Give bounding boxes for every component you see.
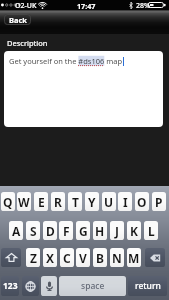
button[interactable]: G — [76, 221, 90, 240]
button[interactable]: Shift — [1, 248, 21, 267]
button[interactable]: Get yourself on the #ds106 map — [4, 51, 163, 127]
button[interactable]: D — [43, 221, 57, 240]
button[interactable]: O — [135, 192, 149, 211]
staticText: J — [115, 223, 119, 239]
staticText: O — [137, 194, 147, 210]
staticText: V — [79, 250, 87, 266]
staticText: return — [135, 280, 161, 292]
button[interactable]: P — [152, 192, 166, 211]
staticText: Get yourself on the #ds106 map — [9, 56, 123, 66]
button[interactable]: I — [118, 192, 132, 211]
staticText: N — [112, 250, 122, 266]
button[interactable]: X — [43, 248, 57, 267]
staticText: B — [96, 250, 104, 266]
staticText: Z — [30, 250, 37, 266]
button[interactable]: C — [60, 248, 74, 267]
button[interactable]: R — [51, 192, 65, 211]
button[interactable]: return — [128, 276, 167, 296]
button[interactable]: M — [127, 248, 141, 267]
staticText: W — [18, 194, 30, 210]
staticText: M — [128, 250, 140, 266]
button[interactable]: space — [59, 276, 126, 296]
button[interactable]: T — [68, 192, 82, 211]
button[interactable]: S — [26, 221, 40, 240]
staticText: P — [155, 194, 163, 210]
button[interactable]: E — [34, 192, 48, 211]
staticText: Description — [7, 38, 48, 48]
button[interactable]: H — [93, 221, 107, 240]
staticText: T — [72, 194, 79, 210]
staticText: 123 — [3, 280, 18, 292]
button[interactable]: Backspace — [145, 248, 165, 267]
button[interactable]: W — [17, 192, 31, 211]
button[interactable]: Dictate — [41, 276, 57, 296]
staticText: G — [79, 223, 88, 239]
staticText: X — [46, 250, 55, 266]
staticText: C — [63, 250, 71, 266]
staticText: A — [12, 223, 21, 239]
staticText: K — [130, 223, 138, 239]
staticText: I — [123, 194, 128, 210]
button[interactable]: Back — [4, 14, 31, 25]
button[interactable]: Z — [26, 248, 40, 267]
staticText: Y — [88, 194, 96, 210]
button[interactable]: V — [76, 248, 90, 267]
staticText: 28% — [136, 1, 150, 11]
staticText: L — [148, 223, 155, 239]
staticText: F — [63, 223, 70, 239]
button[interactable]: 123 — [1, 276, 19, 296]
staticText: H — [95, 223, 105, 239]
button[interactable]: J — [110, 221, 124, 240]
staticText: Back — [9, 15, 27, 25]
button[interactable]: Y — [85, 192, 99, 211]
staticText: U — [104, 194, 114, 210]
staticText: Q — [3, 194, 13, 210]
button[interactable]: A — [9, 221, 23, 240]
staticText: S — [30, 223, 37, 239]
staticText: D — [46, 223, 55, 239]
staticText: E — [38, 194, 45, 210]
button[interactable]: Next keyboard — [22, 276, 39, 296]
button[interactable]: Q — [1, 192, 15, 211]
staticText: space — [81, 280, 105, 292]
staticText: 17:47 — [77, 1, 96, 11]
staticText: O2-UK — [15, 1, 37, 11]
button[interactable]: N — [110, 248, 124, 267]
button[interactable]: F — [59, 221, 73, 240]
button[interactable]: B — [93, 248, 107, 267]
staticText: R — [54, 194, 62, 210]
button[interactable]: L — [144, 221, 158, 240]
button[interactable]: K — [127, 221, 141, 240]
button[interactable]: U — [102, 192, 116, 211]
